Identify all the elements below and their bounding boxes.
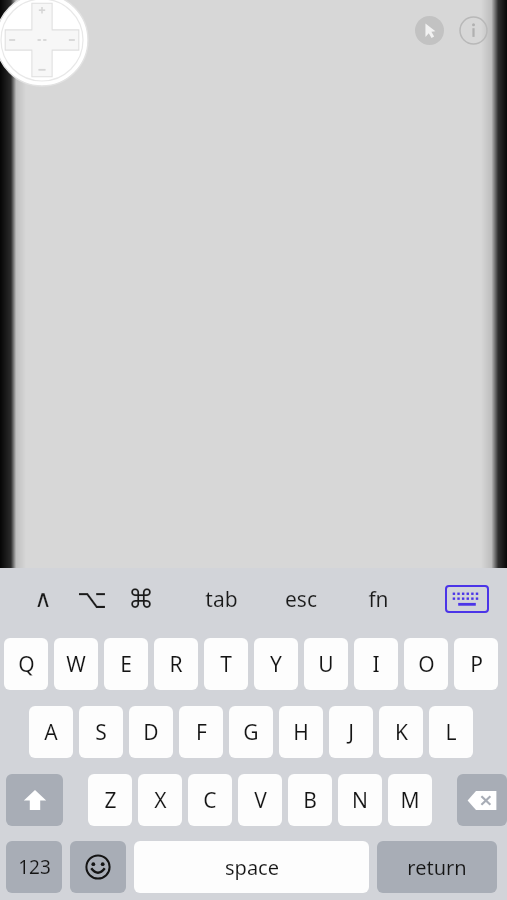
button[interactable]: Hide keyboard [444,584,490,614]
button[interactable]: L [429,706,473,758]
button[interactable]: H [279,706,323,758]
button[interactable]: tab [198,582,244,616]
button[interactable]: Q [4,638,48,690]
button[interactable]: J [329,706,373,758]
button[interactable]: fn [355,582,401,616]
button[interactable]: ∧ [20,582,66,616]
button[interactable]: P [454,638,498,690]
staticText: L [445,718,457,747]
staticText: U [318,650,334,679]
staticText: Z [104,786,117,815]
button[interactable]: ⌥ [69,582,115,616]
staticText: C [203,786,217,815]
button[interactable]: Shift [6,774,63,826]
staticText: fn [368,585,389,614]
staticText: Y [270,650,282,679]
staticText: K [395,718,408,747]
staticText: X [154,786,167,815]
button[interactable]: Info [459,16,488,45]
button[interactable]: W [54,638,98,690]
button[interactable]: K [379,706,423,758]
button[interactable]: Directional pad [0,0,90,88]
button[interactable]: Z [88,774,132,826]
button[interactable]: space [134,841,369,893]
button[interactable]: ⌘ [118,582,164,616]
button[interactable]: S [79,706,123,758]
button[interactable]: O [404,638,448,690]
button[interactable]: T [204,638,248,690]
staticText: ⌥ [77,584,107,614]
button[interactable]: B [288,774,332,826]
staticText: G [243,718,259,747]
staticText: P [470,650,483,679]
button[interactable]: C [188,774,232,826]
button[interactable]: N [338,774,382,826]
button[interactable]: F [179,706,223,758]
staticText: R [169,650,183,679]
button[interactable]: 123 [6,841,62,893]
button[interactable]: E [104,638,148,690]
staticText: return [407,854,467,881]
staticText: O [418,650,435,679]
button[interactable]: G [229,706,273,758]
staticText: S [95,718,107,747]
staticText: ∧ [34,585,52,613]
staticText: N [352,786,368,815]
staticText: B [303,786,317,815]
button[interactable]: return [377,841,497,893]
button[interactable]: Backspace [457,774,507,826]
staticText: V [254,786,267,815]
button[interactable]: R [154,638,198,690]
button[interactable]: Emoji [70,841,126,893]
staticText: D [143,718,159,747]
staticText: esc [285,585,317,614]
button[interactable]: M [388,774,432,826]
staticText: W [66,650,86,679]
staticText: tab [205,585,238,614]
button[interactable]: U [304,638,348,690]
button[interactable]: I [354,638,398,690]
staticText: J [348,718,354,747]
staticText: space [225,854,279,881]
staticText: F [196,718,207,747]
button[interactable]: X [138,774,182,826]
button[interactable]: Pointer [415,16,444,45]
staticText: E [120,650,132,679]
button[interactable]: D [129,706,173,758]
staticText: H [293,718,309,747]
staticText: 123 [18,854,51,880]
button[interactable]: Y [254,638,298,690]
staticText: Q [18,650,35,679]
staticText: M [400,786,420,815]
staticText: A [44,718,58,747]
staticText: ⌘ [128,584,154,614]
staticText: T [220,650,232,679]
button[interactable]: esc [278,582,324,616]
button[interactable]: V [238,774,282,826]
button[interactable]: A [29,706,73,758]
staticText: I [372,650,380,679]
